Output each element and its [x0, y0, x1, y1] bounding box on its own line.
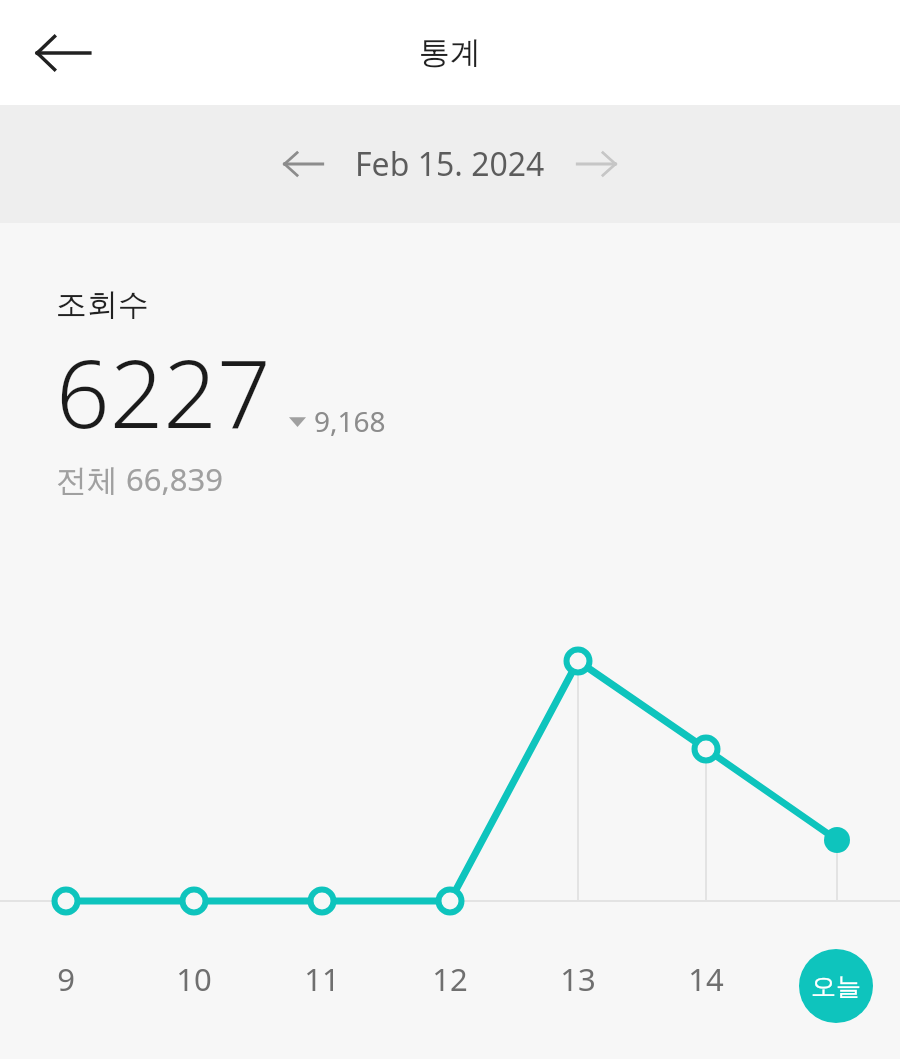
- staticText: 전체 66,839: [56, 458, 224, 500]
- button[interactable]: Back: [26, 16, 100, 90]
- staticText: 14: [661, 958, 751, 1000]
- staticText: 12: [405, 958, 495, 1000]
- button[interactable]: 오늘: [799, 949, 873, 1023]
- staticText: 통계: [419, 33, 481, 72]
- staticText: 6227: [56, 328, 271, 456]
- staticText: Feb 15. 2024: [355, 142, 545, 186]
- staticText: 10: [149, 958, 239, 1000]
- button[interactable]: Previous day: [269, 130, 337, 198]
- staticText: 9,168: [314, 402, 386, 440]
- staticText: 조회수: [56, 285, 149, 324]
- button[interactable]: Next day: [563, 130, 631, 198]
- staticText: 오늘: [811, 971, 861, 1002]
- staticText: 9: [21, 958, 111, 1000]
- staticText: 13: [533, 958, 623, 1000]
- staticText: 11: [277, 958, 367, 1000]
